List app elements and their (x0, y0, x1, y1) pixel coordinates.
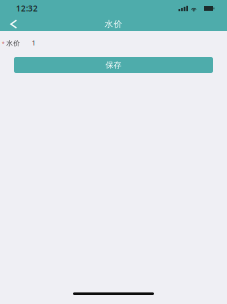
staticText: 水价 (6, 39, 20, 48)
button[interactable]: Back (4, 17, 23, 31)
staticText: 12:32 (16, 3, 38, 14)
staticText: 保存 (105, 60, 121, 70)
staticText: 1 (32, 38, 36, 47)
staticText: * (2, 40, 5, 47)
staticText: 水价 (104, 18, 122, 29)
button[interactable]: 保存 (14, 57, 213, 73)
button[interactable]: * (0, 36, 227, 50)
